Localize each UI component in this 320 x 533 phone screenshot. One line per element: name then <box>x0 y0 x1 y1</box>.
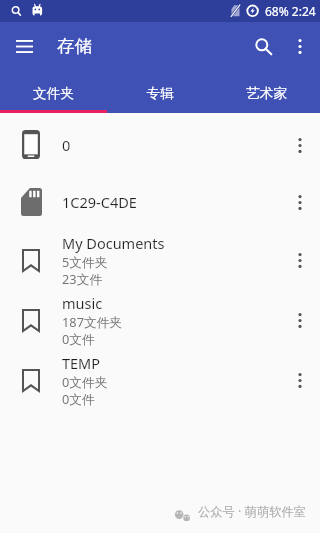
staticText: music <box>62 293 103 313</box>
staticText: 0文件夹 <box>62 373 108 390</box>
button[interactable]: 0 <box>0 116 320 173</box>
button[interactable]: More options <box>280 182 320 222</box>
button[interactable]: 艺术家 <box>213 70 320 113</box>
staticText: 23文件 <box>62 270 103 287</box>
staticText: My Documents <box>62 233 165 253</box>
button[interactable]: Menu <box>0 22 49 70</box>
button[interactable]: More options <box>280 22 320 70</box>
staticText: 文件夹 <box>33 85 74 102</box>
button[interactable]: More options <box>280 360 320 400</box>
button[interactable]: 专辑 <box>106 70 213 113</box>
staticText: 187文件夹 <box>62 313 123 330</box>
button[interactable]: 文件夹 <box>0 70 106 113</box>
staticText: 0 <box>62 135 71 155</box>
staticText: TEMP <box>62 353 101 373</box>
staticText: 1C29-C4DE <box>62 192 137 212</box>
button[interactable]: TEMP <box>0 350 320 410</box>
button[interactable]: My Documents <box>0 230 320 290</box>
button[interactable]: 1C29-C4DE <box>0 173 320 230</box>
staticText: 0文件 <box>62 330 95 347</box>
staticText: 68% 2:24 <box>265 3 316 19</box>
staticText: 0文件 <box>62 390 95 407</box>
staticText: 5文件夹 <box>62 253 108 270</box>
staticText: 公众号 · 萌萌软件室 <box>198 503 307 520</box>
button[interactable]: More options <box>280 125 320 165</box>
staticText: 存储 <box>57 35 92 57</box>
button[interactable]: Search <box>236 22 280 70</box>
button[interactable]: More options <box>280 300 320 340</box>
staticText: 艺术家 <box>246 85 287 102</box>
button[interactable]: music <box>0 290 320 350</box>
staticText: 专辑 <box>146 85 174 102</box>
button[interactable]: More options <box>280 240 320 280</box>
